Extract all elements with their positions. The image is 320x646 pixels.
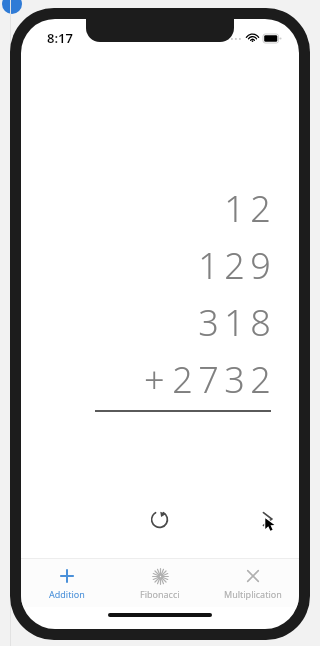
button[interactable]: Addition xyxy=(21,563,113,604)
button[interactable]: Multiplication xyxy=(206,563,299,604)
staticText: 2 xyxy=(250,184,271,233)
staticText: Addition xyxy=(49,588,85,600)
staticText: 3 xyxy=(198,298,219,347)
staticText: 1 xyxy=(198,241,219,290)
staticText: 2 xyxy=(224,241,245,290)
staticText: + xyxy=(144,355,165,404)
button[interactable]: Step xyxy=(247,499,287,539)
staticText: 2 xyxy=(172,355,193,404)
staticText: 1 xyxy=(224,298,245,347)
staticText: 1 xyxy=(224,184,245,233)
staticText: Multiplication xyxy=(224,588,282,600)
button[interactable]: Fibonacci xyxy=(113,563,206,604)
staticText: 3 xyxy=(224,355,245,404)
staticText: 9 xyxy=(250,241,271,290)
staticText: 8 xyxy=(250,298,271,347)
staticText: Fibonacci xyxy=(140,588,180,600)
button[interactable]: Reset xyxy=(139,499,179,539)
staticText: 7 xyxy=(198,355,219,404)
staticText: 2 xyxy=(250,355,271,404)
staticText: 8:17 xyxy=(47,29,73,47)
